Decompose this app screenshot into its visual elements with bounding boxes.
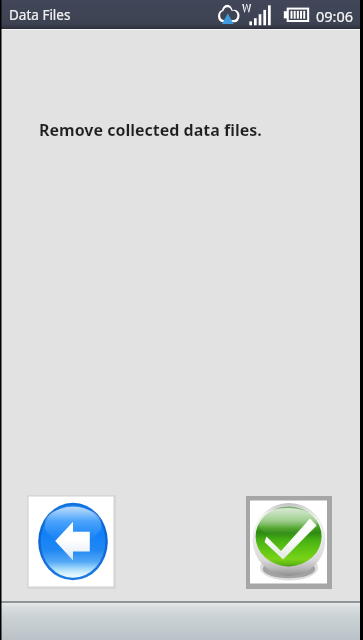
staticText: Remove collected data files. (39, 119, 262, 141)
staticText: 09:06 (316, 6, 354, 26)
button[interactable]: Back (27, 495, 116, 589)
button[interactable]: Confirm (246, 496, 332, 589)
staticText: Data Files (9, 6, 71, 24)
